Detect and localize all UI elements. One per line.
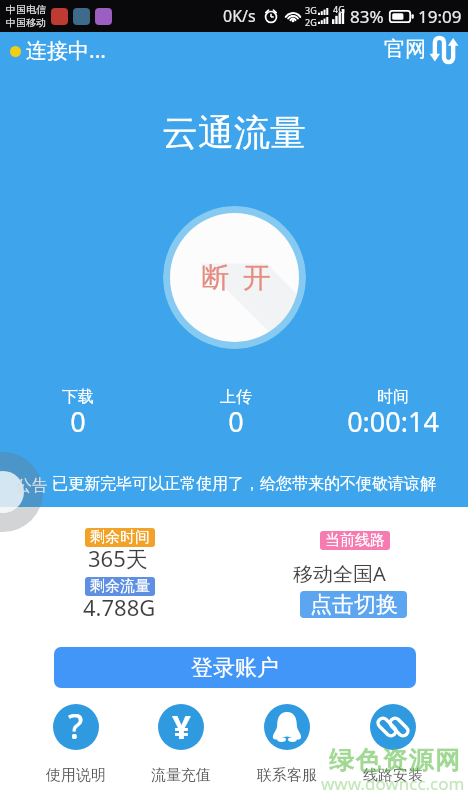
button[interactable]: 登录账户 <box>54 647 416 688</box>
button[interactable]: 联系客服 <box>237 704 337 785</box>
staticText: 连接中... <box>26 36 106 65</box>
staticText: 4G <box>333 3 345 15</box>
staticText: 中国移动 <box>6 16 46 29</box>
staticText: 下载 <box>18 387 138 407</box>
staticText: 3G <box>305 4 317 16</box>
staticText: 线路安装 <box>363 766 423 785</box>
staticText: 联系客服 <box>257 766 317 785</box>
staticText: 点击切换 <box>310 591 398 618</box>
staticText: 移动全国A <box>293 560 386 587</box>
staticText: 剩余时间 <box>90 528 150 547</box>
staticText: 官网 <box>384 36 426 62</box>
staticText: 使用说明 <box>46 766 106 785</box>
button[interactable]: ¥ <box>131 704 231 785</box>
button[interactable]: ? <box>26 704 126 785</box>
staticText: 剩余流量 <box>90 577 150 596</box>
staticText: 绿色资源网 <box>329 745 462 776</box>
staticText: 公告： <box>16 476 64 496</box>
staticText: 流量充值 <box>151 766 211 785</box>
staticText: 19:09 <box>418 5 462 28</box>
button[interactable]: 线路安装 <box>343 704 443 785</box>
staticText: 0K/s <box>223 5 256 27</box>
staticText: 4.788G <box>83 592 156 622</box>
staticText: 时间 <box>333 387 453 407</box>
button[interactable]: 断开 <box>163 206 306 349</box>
staticText: 上传 <box>176 387 296 407</box>
staticText: 当前线路 <box>325 531 385 550</box>
staticText: ? <box>68 704 84 749</box>
button[interactable]: 官网 <box>374 30 468 70</box>
staticText: 0 <box>18 403 138 440</box>
staticText: 0 <box>176 403 296 440</box>
staticText: 断开 <box>195 260 277 295</box>
staticText: 83% <box>350 5 384 28</box>
staticText: ¥ <box>172 704 191 749</box>
staticText: 365天 <box>88 543 148 573</box>
staticText: 中国电信 <box>6 3 46 16</box>
staticText: 登录账户 <box>191 654 279 682</box>
staticText: www.downcc.com <box>321 772 465 795</box>
staticText: 已更新完毕可以正常使用了，给您带来的不便敬请谅解 <box>52 474 436 494</box>
staticText: 云通流量 <box>0 110 468 155</box>
staticText: 2G <box>305 16 317 28</box>
button[interactable]: 连接中... <box>0 32 116 70</box>
button[interactable]: 点击切换 <box>300 591 407 618</box>
staticText: 0:00:14 <box>333 403 453 440</box>
